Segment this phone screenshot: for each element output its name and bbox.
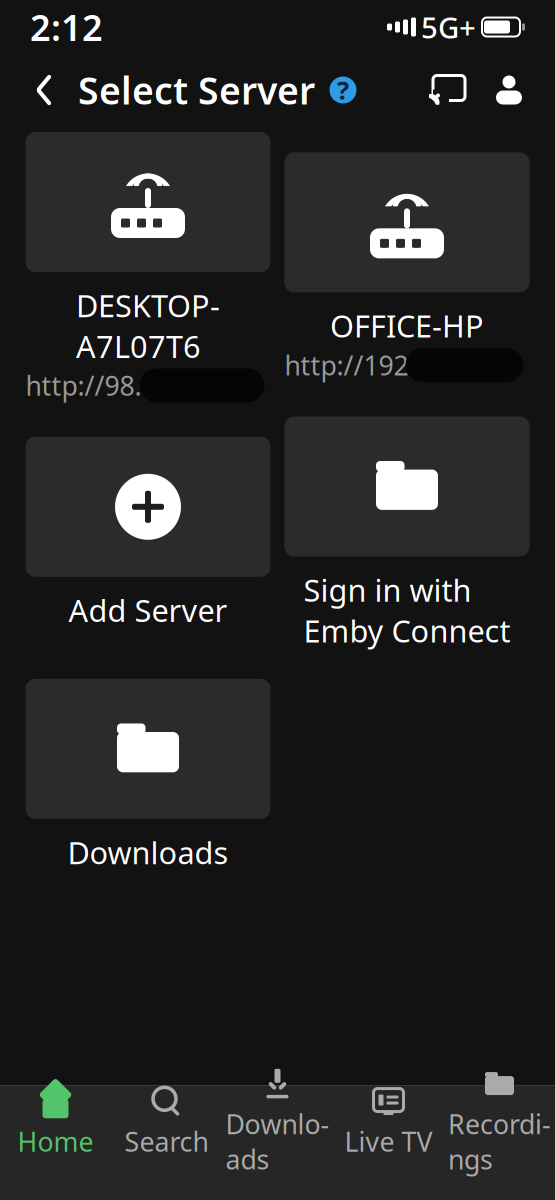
staticText: Add Server <box>68 590 227 630</box>
staticText: ? <box>337 73 349 107</box>
button[interactable]: Search <box>111 1086 222 1158</box>
staticText: Live TV <box>344 1124 432 1159</box>
staticText: Downloads <box>67 832 228 873</box>
staticText: 5G+ <box>421 7 476 46</box>
staticText: http://192.16 <box>284 347 445 383</box>
staticText: Downloads <box>225 1106 329 1177</box>
staticText: Search <box>124 1124 208 1159</box>
button[interactable]: Recordings <box>444 1086 555 1158</box>
button[interactable]: Live TV <box>333 1086 444 1158</box>
button[interactable]: Home <box>0 1086 111 1158</box>
button[interactable]: Add Server <box>25 437 270 630</box>
staticText: OFFICE-HP <box>330 305 484 346</box>
staticText: Recordings <box>448 1106 551 1177</box>
staticText: Home <box>17 1124 93 1159</box>
button[interactable]: Downloads <box>25 679 270 873</box>
button[interactable]: Cast <box>423 66 471 114</box>
staticText: Select Server <box>78 65 315 115</box>
button[interactable]: Account <box>485 66 533 114</box>
staticText: http://98.168 1 <box>25 368 208 403</box>
button[interactable]: DESKTOP-A7L07T6 <box>25 132 270 400</box>
staticText: 2:12 <box>30 3 103 51</box>
button[interactable]: Downloads <box>222 1086 333 1158</box>
button[interactable]: Back <box>22 66 66 114</box>
button[interactable]: Sign in with Emby Connect <box>284 416 529 651</box>
button[interactable]: OFFICE-HP <box>284 152 529 380</box>
staticText: Sign in with Emby Connect <box>303 569 510 651</box>
staticText: DESKTOP-A7L07T6 <box>76 285 220 366</box>
button[interactable]: Help <box>321 68 365 112</box>
